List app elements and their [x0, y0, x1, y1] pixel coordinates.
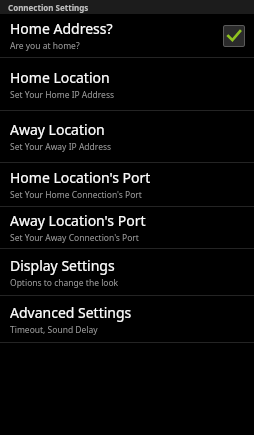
- staticText: Home Location: [10, 68, 110, 87]
- staticText: Home Address?: [10, 19, 113, 38]
- button[interactable]: Away Location: [0, 111, 254, 162]
- staticText: Are you at home?: [10, 40, 80, 52]
- staticText: Set Your Home IP Address: [10, 89, 115, 101]
- staticText: Set Your Away Connection's Port: [10, 232, 139, 244]
- button[interactable]: Home address toggle, checked: [223, 25, 245, 47]
- button[interactable]: Advanced Settings: [0, 296, 254, 342]
- button[interactable]: Home Address?: [0, 14, 254, 57]
- button[interactable]: Home Location: [0, 58, 254, 110]
- staticText: Display Settings: [10, 256, 115, 275]
- staticText: Set Your Away IP Address: [10, 141, 112, 153]
- staticText: Advanced Settings: [10, 303, 132, 322]
- staticText: Away Location's Port: [10, 211, 146, 230]
- staticText: Options to change the look: [10, 277, 119, 289]
- staticText: Timeout, Sound Delay: [10, 324, 98, 336]
- button[interactable]: Home Location's Port: [0, 163, 254, 206]
- button[interactable]: Away Location's Port: [0, 207, 254, 248]
- staticText: Connection Settings: [8, 2, 89, 13]
- button[interactable]: Display Settings: [0, 249, 254, 295]
- staticText: Home Location's Port: [10, 168, 151, 187]
- staticText: Away Location: [10, 120, 105, 139]
- staticText: Set Your Home Connection's Port: [10, 189, 142, 201]
